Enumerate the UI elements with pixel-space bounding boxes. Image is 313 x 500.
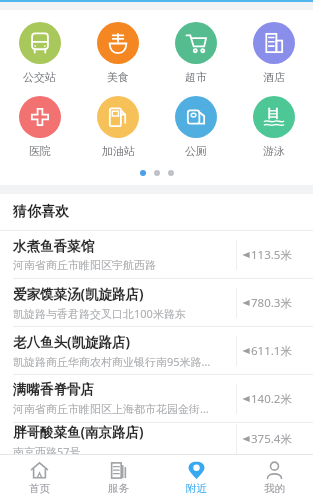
staticText: 公厕	[185, 144, 207, 158]
other: 我的	[265, 461, 284, 480]
other: 服务	[109, 461, 128, 480]
staticText: 公交站	[23, 70, 56, 84]
staticText: 酒店	[263, 70, 285, 84]
staticText: 凯旋路商丘华商农村商业银行南95米路…	[13, 354, 211, 369]
button[interactable]: 公厕	[157, 90, 235, 164]
other: 首页	[30, 461, 49, 480]
staticText: 满嘴香脊骨店	[13, 381, 94, 398]
staticText: 河南省商丘市睢阳区上海都市花园金街…	[13, 401, 209, 416]
button[interactable]: 首页	[0, 455, 79, 500]
button[interactable]: 游泳	[235, 90, 313, 164]
button[interactable]: 酒店	[235, 16, 313, 90]
staticText: 服务	[108, 482, 129, 495]
button[interactable]: 附近	[157, 455, 235, 500]
staticText: 611.1米	[251, 343, 292, 359]
button[interactable]: 美食	[79, 16, 157, 90]
staticText: 胖哥酸菜鱼(南京路店)	[13, 423, 144, 441]
button[interactable]: 超市	[157, 16, 235, 90]
staticText: 加油站	[102, 144, 135, 158]
button[interactable]: 老八鱼头(凯旋路店)	[0, 327, 313, 374]
button[interactable]: 公交站	[0, 16, 79, 90]
staticText: 老八鱼头(凯旋路店)	[13, 333, 131, 351]
staticText: 附近	[186, 482, 207, 495]
other: 附近	[187, 461, 206, 480]
staticText: 113.5米	[251, 247, 292, 263]
button[interactable]: 胖哥酸菜鱼(南京路店)	[0, 423, 313, 454]
button[interactable]: 医院	[0, 90, 79, 164]
staticText: 凯旋路与香君路交叉口北100米路东	[13, 306, 186, 321]
staticText: 首页	[29, 482, 50, 495]
staticText: 医院	[29, 144, 51, 158]
button[interactable]: 我的	[235, 455, 313, 500]
button[interactable]: 满嘴香脊骨店	[0, 375, 313, 422]
staticText: 猜你喜欢	[13, 203, 69, 221]
staticText: 我的	[264, 482, 285, 495]
staticText: 780.3米	[251, 295, 292, 311]
staticText: 游泳	[263, 144, 285, 158]
staticText: 140.2米	[251, 391, 292, 407]
button[interactable]: 服务	[79, 455, 157, 500]
staticText: 超市	[185, 70, 207, 84]
staticText: 爱家馍菜汤(凯旋路店)	[13, 285, 144, 303]
staticText: 南京西路57号	[13, 444, 81, 454]
button[interactable]: 水煮鱼香菜馆	[0, 231, 313, 278]
button[interactable]: 爱家馍菜汤(凯旋路店)	[0, 279, 313, 326]
staticText: 河南省商丘市睢阳区宇航西路	[13, 258, 156, 272]
staticText: 美食	[107, 70, 129, 84]
staticText: 水煮鱼香菜馆	[13, 238, 94, 255]
button[interactable]: 加油站	[79, 90, 157, 164]
staticText: 375.4米	[251, 431, 292, 447]
